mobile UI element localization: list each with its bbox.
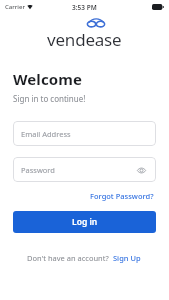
staticText: Forgot Password? [90,191,154,201]
staticText: Welcome [13,69,83,89]
button[interactable]: Email Address [13,121,156,146]
staticText: Email Address [21,129,71,139]
button[interactable]: Password [13,157,156,182]
staticText: vendease [47,28,122,51]
staticText: Sign Up [113,253,141,263]
button[interactable]: Forgot Password? [88,189,156,203]
staticText: Log in [72,216,98,228]
staticText: Sign in to continue! [13,93,86,104]
staticText: 3:53 PM [72,3,97,12]
button[interactable]: Sign Up [112,251,142,265]
staticText: Password [21,165,55,175]
button[interactable]: Show password [134,163,148,177]
button[interactable]: Log in [13,211,156,233]
staticText: Don't have an account? [27,253,109,263]
staticText: Carrier [5,3,25,11]
